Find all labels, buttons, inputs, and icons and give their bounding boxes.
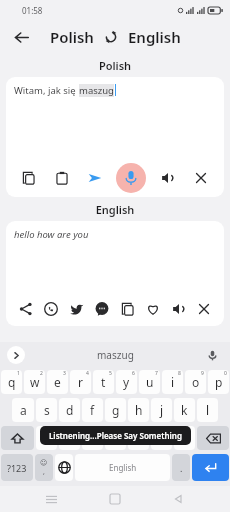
button[interactable]: m [174,426,195,450]
button[interactable]: v [105,426,126,450]
button[interactable]: f [82,398,103,422]
button[interactable]: Copy [117,298,139,320]
button[interactable]: Clear [190,167,212,189]
staticText: 8 [178,370,181,377]
staticText: s [44,402,50,418]
staticText: , [43,467,45,477]
button[interactable]: ☺ [35,454,53,481]
button[interactable]: Share [15,298,37,320]
button[interactable]: Paste [51,167,73,189]
button[interactable]: Speak [157,167,179,189]
staticText: 2 [40,370,43,377]
button[interactable]: e [47,370,68,394]
button[interactable]: . [172,454,190,481]
button[interactable]: k [174,398,195,422]
button[interactable]: j [151,398,172,422]
button[interactable]: s [36,398,57,422]
button[interactable]: Enter [192,454,229,481]
button[interactable]: z [36,426,57,450]
button[interactable]: Recents [38,486,64,512]
staticText: j [160,402,164,418]
staticText: o [192,374,200,390]
staticText: z [44,430,50,446]
button[interactable]: More suggestions [7,346,25,364]
staticText: e [54,374,61,390]
staticText: English [109,462,137,473]
staticText: p [215,374,223,390]
staticText: r [78,374,83,390]
button[interactable]: Back [166,486,192,512]
button[interactable]: Shift [1,426,34,450]
button[interactable]: Home [102,486,128,512]
button[interactable]: c [82,426,103,450]
button[interactable]: t [93,370,114,394]
staticText: 5 [109,370,112,377]
button[interactable]: d [59,398,80,422]
staticText: ☺ [40,459,48,467]
button[interactable]: Swap languages [101,27,121,47]
staticText: u [146,374,154,390]
staticText: l [206,402,210,418]
button[interactable]: a [12,398,34,422]
button[interactable]: l [197,398,218,422]
staticText: 1 [17,370,20,377]
staticText: w [30,374,40,390]
button[interactable]: Close [193,298,215,320]
button[interactable]: x [59,426,80,450]
button[interactable]: Speak [168,298,190,320]
button[interactable]: Favourite [142,298,164,320]
button[interactable]: Polish [50,27,94,47]
staticText: b [135,430,143,446]
staticText: h [135,402,143,418]
button[interactable]: r [70,370,91,394]
button[interactable]: u [139,370,160,394]
staticText: Polish [0,58,230,73]
staticText: maszug [79,84,114,97]
button[interactable]: Change language [55,454,73,481]
button[interactable]: Microphone [116,163,146,193]
staticText: k [181,402,188,418]
button[interactable]: SMS [91,298,113,320]
button[interactable]: i [162,370,183,394]
button[interactable]: ?123 [1,454,33,481]
staticText: x [66,430,73,446]
button[interactable]: Voice input [203,346,221,364]
button[interactable]: p [208,370,229,394]
button[interactable]: Backspace [197,426,229,450]
staticText: q [8,374,16,390]
staticText: ?123 [7,462,27,474]
button[interactable]: Translate [84,167,106,189]
staticText: v [112,430,119,446]
button[interactable]: o [185,370,206,394]
button[interactable]: y [116,370,137,394]
button[interactable]: h [128,398,149,422]
staticText: m [179,430,191,446]
button[interactable]: WhatsApp [40,298,62,320]
button[interactable]: Copy [18,167,40,189]
staticText: g [112,402,120,418]
button[interactable]: English [128,27,181,47]
button[interactable]: Back [8,24,34,50]
staticText: hello how are you [14,228,89,241]
button[interactable]: b [128,426,149,450]
staticText: c [90,430,96,446]
staticText: English [0,202,230,217]
staticText: t [101,374,106,390]
staticText: Listnening...Please Say Something [49,430,182,441]
staticText: 7 [155,370,158,377]
button[interactable]: n [151,426,172,450]
button[interactable]: q [1,370,22,394]
button[interactable]: English [75,454,170,481]
staticText: 3 [63,370,66,377]
staticText: 6 [132,370,135,377]
staticText: 0 [224,370,227,377]
staticText: 01:58 [22,5,43,16]
button[interactable]: Twitter [66,298,88,320]
staticText: . [180,462,183,474]
staticText: Witam, jak się [14,84,79,97]
staticText: n [158,430,166,446]
button[interactable]: w [24,370,45,394]
staticText: 9 [201,370,204,377]
button[interactable]: maszug [97,348,134,362]
button[interactable]: g [105,398,126,422]
